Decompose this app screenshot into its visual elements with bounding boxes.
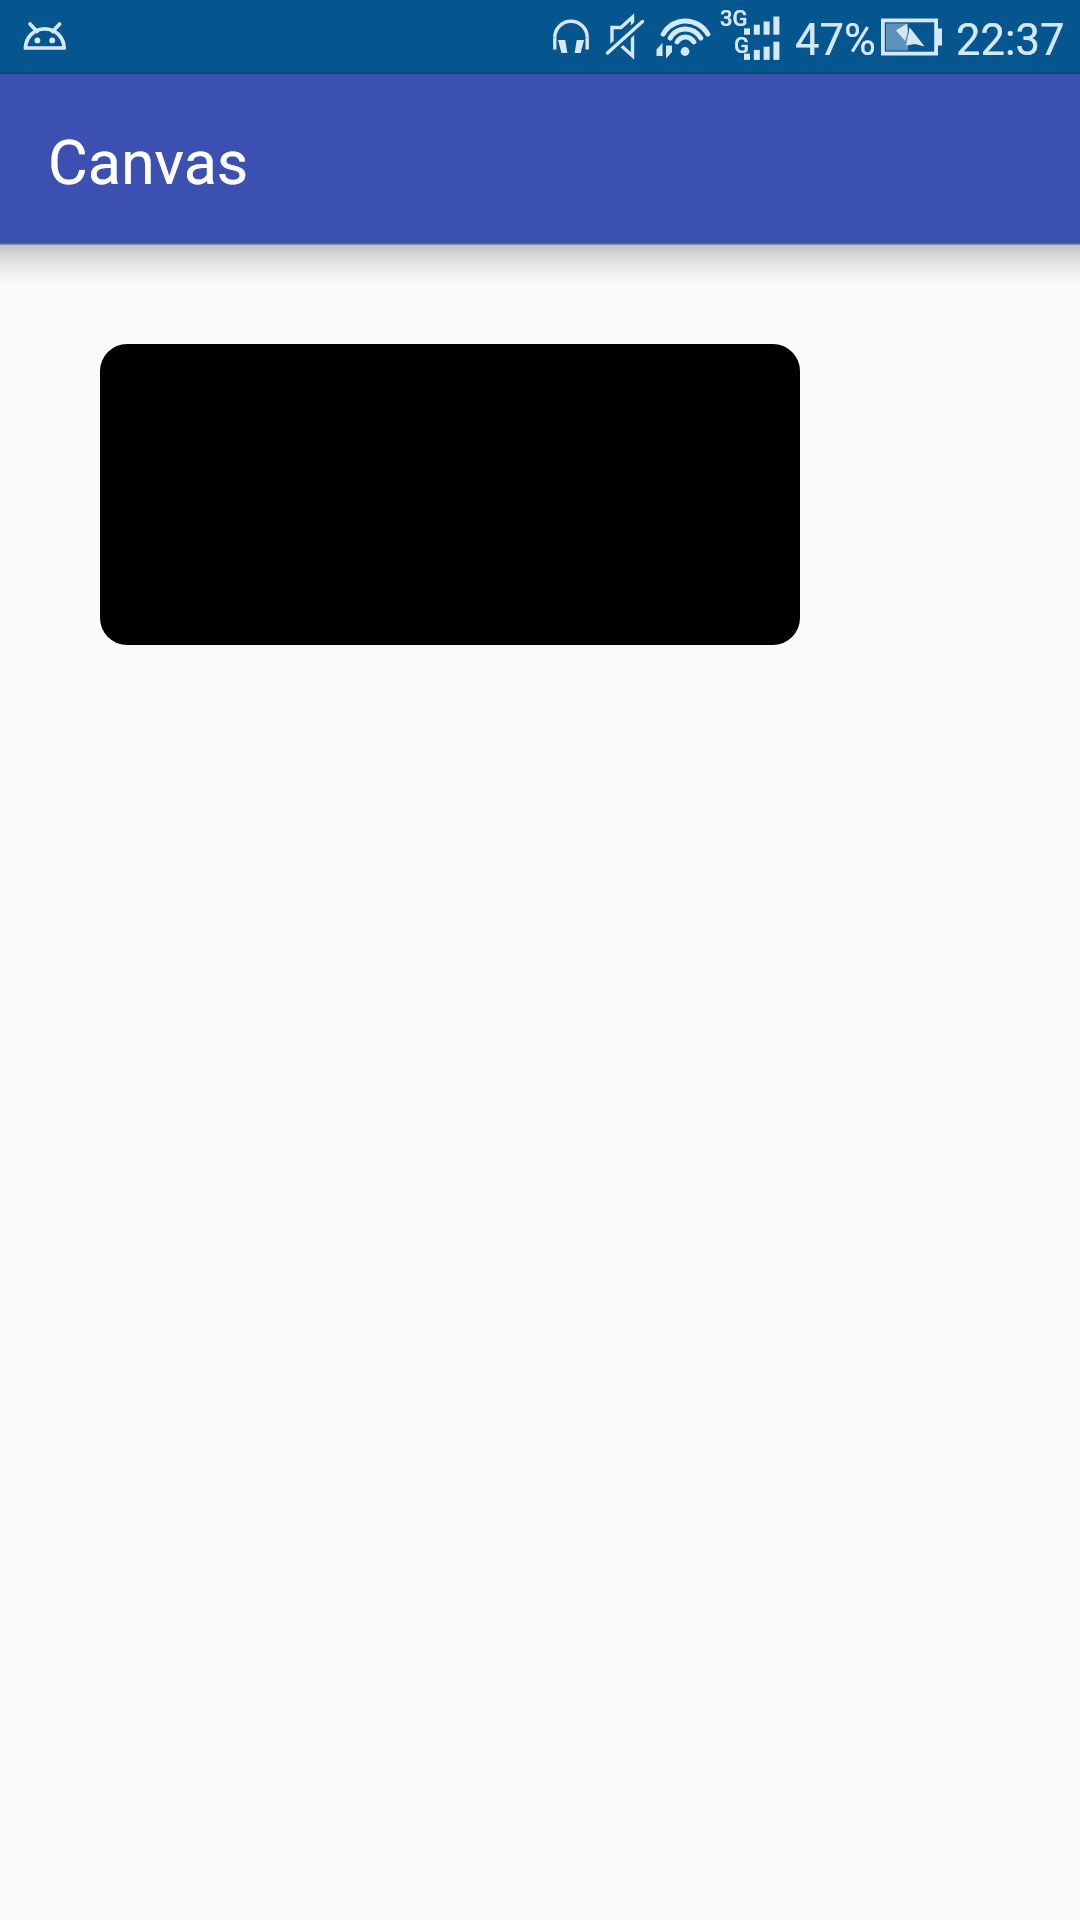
staticText: 3G	[720, 6, 748, 32]
staticText: 47%	[795, 15, 876, 66]
button[interactable]: Canvas drawing area	[100, 344, 800, 645]
staticText: G	[734, 33, 749, 59]
staticText: 22:37	[956, 15, 1065, 66]
staticText: Canvas	[48, 127, 249, 198]
